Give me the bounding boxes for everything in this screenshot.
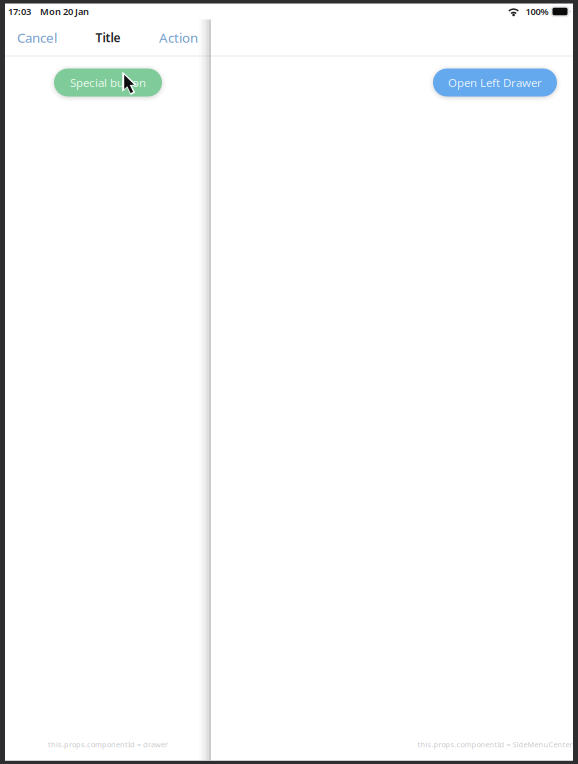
staticText: Mon 20 Jan [40, 5, 89, 18]
staticText: Special button [70, 75, 146, 90]
button[interactable]: Action [159, 29, 198, 46]
staticText: this.props.componentId = SideMenuCenter [417, 739, 572, 749]
staticText: this.props.componentId = drawer [48, 739, 168, 749]
staticText: Title [95, 29, 120, 45]
button[interactable]: Cancel [17, 29, 57, 46]
staticText: Open Left Drawer [448, 75, 542, 90]
staticText: Action [159, 29, 198, 46]
staticText: 100% [525, 5, 548, 18]
button[interactable]: Special button [54, 68, 162, 96]
button[interactable]: Open Left Drawer [433, 68, 557, 96]
staticText: Cancel [17, 29, 57, 46]
staticText: 17:03 [8, 5, 31, 18]
